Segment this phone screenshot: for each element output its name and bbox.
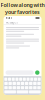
staticText: Follow along with <box>0 1 44 8</box>
staticText: your favorites <box>5 8 40 16</box>
button[interactable]: Send <box>35 70 39 75</box>
button[interactable]: Messages <box>5 20 17 25</box>
staticText: Messages <box>5 21 17 24</box>
staticText: 9:41 <box>5 16 12 20</box>
